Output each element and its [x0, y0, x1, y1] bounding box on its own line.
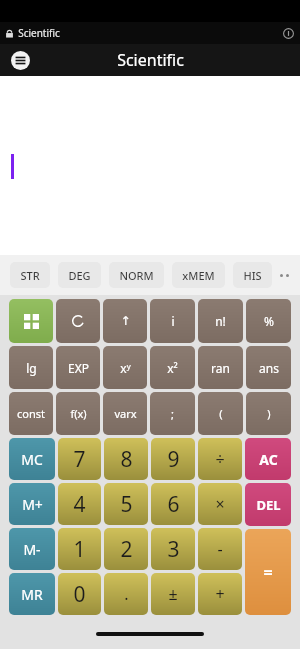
button[interactable]: const — [9, 392, 53, 435]
staticText: i — [171, 313, 175, 329]
button[interactable]: i — [150, 299, 195, 343]
staticText: DEL — [256, 496, 281, 514]
button[interactable]: MR — [9, 573, 55, 615]
staticText: M- — [23, 540, 41, 559]
button[interactable]: n! — [198, 299, 243, 343]
staticText: DEG — [68, 268, 91, 283]
button[interactable]: × — [198, 483, 242, 525]
button[interactable]: ± — [151, 573, 195, 615]
staticText: × — [215, 493, 225, 515]
staticText: 1 — [73, 535, 86, 564]
button[interactable]: xMEM — [172, 262, 225, 288]
staticText: . — [124, 583, 129, 605]
staticText: EXP — [68, 360, 89, 376]
button[interactable]: Menu — [8, 48, 32, 72]
button[interactable]: - — [198, 528, 242, 570]
button[interactable]: 1 — [58, 528, 101, 570]
button[interactable]: Info — [282, 27, 295, 40]
button[interactable]: More options — [280, 262, 290, 288]
button[interactable]: EXP — [56, 346, 100, 389]
staticText: 3 — [167, 535, 180, 564]
staticText: ; — [171, 406, 174, 421]
button[interactable]: lg — [9, 346, 53, 389]
staticText: n! — [215, 313, 226, 329]
staticText: 9 — [167, 445, 180, 474]
button[interactable]: 3 — [151, 528, 195, 570]
staticText: 6 — [167, 490, 180, 519]
button[interactable]: ÷ — [198, 438, 242, 480]
staticText: MC — [21, 450, 43, 469]
button[interactable]: = — [245, 529, 291, 615]
button[interactable]: 4 — [58, 483, 101, 525]
staticText: - — [217, 538, 223, 560]
staticText: HIS — [243, 268, 262, 283]
button[interactable]: % — [246, 299, 291, 343]
staticText: MR — [21, 585, 43, 604]
button[interactable]: DEG — [58, 262, 101, 288]
button[interactable]: DEL — [245, 483, 291, 526]
staticText: Scientific — [18, 26, 60, 40]
staticText: 0 — [73, 580, 86, 609]
button[interactable]: HIS — [233, 262, 272, 288]
button[interactable]: 0 — [58, 573, 101, 615]
button[interactable]: M+ — [9, 483, 55, 525]
button[interactable]: ↑ — [103, 299, 147, 343]
staticText: ans — [259, 360, 279, 376]
staticText: lg — [26, 360, 37, 376]
staticText: 8 — [120, 445, 133, 474]
staticText: + — [215, 583, 225, 605]
staticText: x² — [167, 360, 178, 376]
button[interactable]: STR — [10, 262, 50, 288]
button[interactable]: NORM — [109, 262, 164, 288]
button[interactable]: ) — [246, 392, 291, 435]
button[interactable]: + — [198, 573, 242, 615]
staticText: STR — [20, 268, 40, 283]
staticText: NORM — [119, 268, 154, 283]
staticText: ± — [168, 583, 178, 605]
staticText: ÷ — [215, 448, 225, 470]
button[interactable]: Keypad layouts — [9, 299, 53, 343]
staticText: ran — [211, 360, 230, 376]
staticText: f(x) — [70, 406, 87, 421]
button[interactable]: Toggle — [56, 299, 100, 343]
staticText: ) — [267, 406, 271, 421]
staticText: AC — [259, 450, 278, 469]
staticText: ↑ — [120, 314, 131, 328]
staticText: 2 — [120, 535, 133, 564]
button[interactable]: 7 — [58, 438, 101, 480]
staticText: 5 — [120, 490, 133, 519]
button[interactable]: MC — [9, 438, 55, 480]
button[interactable]: 2 — [104, 528, 148, 570]
staticText: varx — [114, 406, 137, 421]
button[interactable]: varx — [103, 392, 147, 435]
staticText: Scientific — [117, 49, 184, 71]
staticText: = — [263, 561, 273, 583]
button[interactable]: AC — [245, 438, 291, 480]
staticText: % — [264, 313, 274, 329]
button[interactable]: ; — [150, 392, 195, 435]
button[interactable]: xʸ — [103, 346, 147, 389]
staticText: const — [17, 406, 45, 421]
button[interactable]: M- — [9, 528, 55, 570]
button[interactable]: . — [104, 573, 148, 615]
staticText: M+ — [22, 495, 43, 514]
button[interactable]: f(x) — [56, 392, 100, 435]
staticText: ( — [219, 406, 223, 421]
button[interactable]: 6 — [151, 483, 195, 525]
button[interactable]: 5 — [104, 483, 148, 525]
staticText: 4 — [73, 490, 86, 519]
staticText: 7 — [73, 445, 86, 474]
button[interactable]: x² — [150, 346, 195, 389]
button[interactable]: 8 — [104, 438, 148, 480]
staticText: xʸ — [120, 360, 131, 376]
button[interactable]: ans — [246, 346, 291, 389]
button[interactable]: ( — [198, 392, 243, 435]
button[interactable]: ran — [198, 346, 243, 389]
button[interactable]: 9 — [151, 438, 195, 480]
staticText: xMEM — [182, 268, 215, 283]
